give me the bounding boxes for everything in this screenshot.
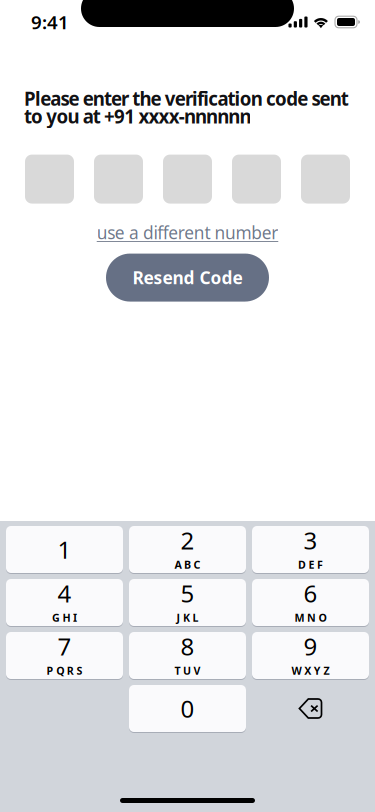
button[interactable]: Resend Code: [106, 254, 269, 302]
staticText: DEF: [298, 558, 323, 572]
staticText: 0: [180, 693, 194, 724]
staticText: JKL: [176, 611, 199, 625]
button[interactable]: 3: [252, 526, 369, 573]
staticText: Please enter the verification code sent: [24, 86, 349, 111]
button[interactable]: Delete: [252, 685, 369, 732]
staticText: 5: [180, 577, 194, 609]
staticText: WXYZ: [292, 664, 329, 678]
button[interactable]: 9: [252, 632, 369, 679]
staticText: 6: [303, 577, 317, 609]
staticText: Resend Code: [132, 266, 242, 289]
button[interactable]: use a different number: [24, 218, 351, 248]
staticText: TUV: [174, 664, 201, 678]
button[interactable]: 8: [129, 632, 246, 679]
staticText: 9:41: [31, 10, 69, 34]
staticText: to you at +91 xxxx-nnnnnn: [24, 104, 251, 129]
button[interactable]: 2: [129, 526, 246, 573]
staticText: MNO: [294, 611, 327, 625]
staticText: 8: [180, 630, 194, 662]
button[interactable]: 1: [6, 526, 123, 573]
button[interactable]: 7: [6, 632, 123, 679]
staticText: 3: [303, 524, 317, 556]
staticText: PQRS: [47, 664, 82, 678]
staticText: 2: [180, 524, 194, 556]
staticText: GHI: [52, 611, 77, 625]
button[interactable]: 4: [6, 579, 123, 626]
staticText: 7: [57, 630, 71, 662]
button[interactable]: 0: [129, 685, 246, 732]
staticText: 4: [57, 577, 71, 609]
staticText: use a different number: [97, 221, 278, 244]
staticText: 9: [303, 630, 317, 662]
staticText: 1: [57, 534, 71, 565]
staticText: ABC: [174, 558, 201, 572]
button[interactable]: 6: [252, 579, 369, 626]
button[interactable]: 5: [129, 579, 246, 626]
